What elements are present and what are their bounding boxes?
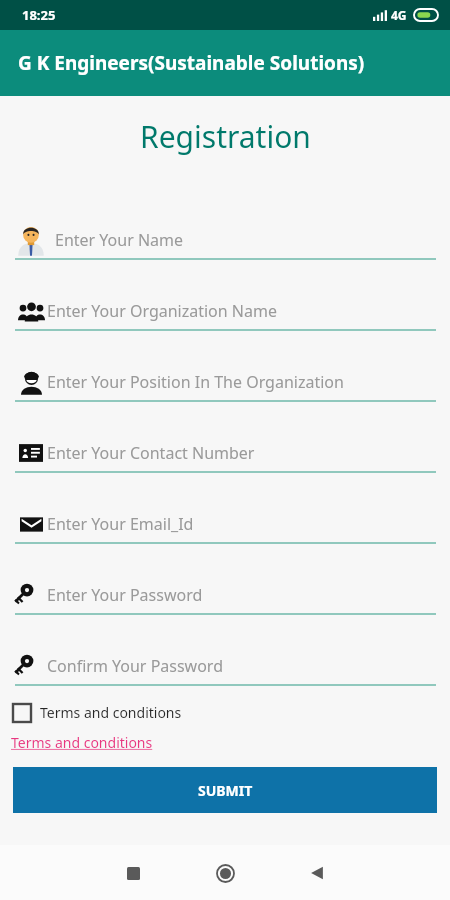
staticText: Registration (140, 116, 311, 157)
staticText: 4G (391, 7, 407, 23)
staticText: Enter Your Password (47, 584, 203, 606)
button[interactable]: Enter Your Organization Name (0, 260, 450, 331)
staticText: Enter Your Position In The Organization (47, 371, 344, 393)
button[interactable]: Back (295, 851, 339, 895)
button[interactable]: Enter Your Email_Id (0, 473, 450, 544)
staticText: Enter Your Organization Name (47, 300, 277, 322)
staticText: 18:25 (22, 6, 56, 24)
staticText: SUBMIT (198, 781, 253, 800)
button[interactable]: Enter Your Contact Number (0, 402, 450, 473)
staticText: Enter Your Contact Number (47, 442, 255, 464)
staticText: G K Engineers(Sustainable Solutions) (18, 50, 365, 76)
button[interactable]: Enter Your Position In The Organization (0, 331, 450, 402)
staticText: Enter Your Email_Id (47, 513, 194, 535)
staticText: Enter Your Name (55, 229, 184, 251)
button[interactable]: SUBMIT (13, 767, 437, 813)
button[interactable]: Home (203, 851, 247, 895)
button[interactable]: Enter Your Password (0, 544, 450, 615)
staticText: Confirm Your Password (47, 655, 224, 677)
button[interactable]: Recent apps (111, 851, 155, 895)
button[interactable]: Terms and conditions (11, 733, 153, 752)
button[interactable]: Enter Your Name (0, 189, 450, 260)
staticText: Terms and conditions (11, 733, 153, 752)
button[interactable]: Terms and conditions (13, 703, 182, 722)
staticText: Terms and conditions (40, 703, 182, 722)
button[interactable]: Confirm Your Password (0, 615, 450, 686)
